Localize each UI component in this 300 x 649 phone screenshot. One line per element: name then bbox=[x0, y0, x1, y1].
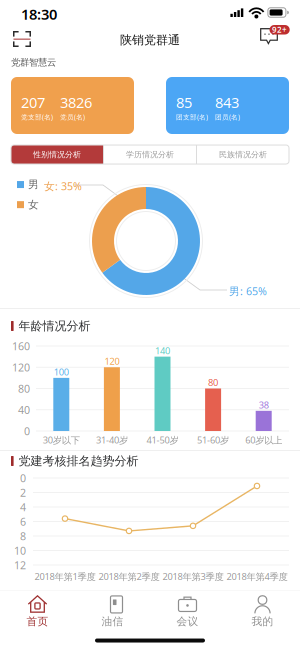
staticText: 18:30 bbox=[21, 4, 57, 24]
staticText: 120 bbox=[104, 355, 119, 367]
staticText: 6 bbox=[20, 514, 26, 529]
button[interactable]: 性别情况分析 bbox=[11, 145, 103, 164]
staticText: 女: 35% bbox=[44, 179, 82, 193]
staticText: 12 bbox=[14, 558, 26, 572]
staticText: 843 bbox=[215, 92, 239, 112]
staticText: 会议 bbox=[176, 615, 198, 628]
staticText: 160 bbox=[12, 339, 30, 353]
staticText: 3826 bbox=[60, 92, 92, 112]
button[interactable]: 学历情况分析 bbox=[104, 145, 196, 164]
staticText: 我的 bbox=[251, 615, 273, 628]
staticText: 80 bbox=[18, 381, 30, 396]
staticText: 30岁以下 bbox=[43, 434, 80, 446]
staticText: 38 bbox=[259, 399, 269, 411]
button[interactable]: 我的 bbox=[225, 590, 300, 632]
staticText: 党支部(名) bbox=[21, 113, 53, 121]
staticText: 团支部(名) bbox=[176, 113, 208, 121]
button[interactable]: 207 bbox=[11, 77, 134, 134]
staticText: 男 bbox=[28, 178, 39, 191]
staticText: 92+ bbox=[272, 24, 287, 35]
staticText: 团员(名) bbox=[215, 113, 240, 121]
button[interactable]: 油信 bbox=[75, 590, 150, 632]
staticText: 2018年第2季度 bbox=[98, 570, 159, 583]
staticText: 民族情况分析 bbox=[219, 150, 267, 159]
staticText: 男: 65% bbox=[229, 284, 267, 298]
staticText: 油信 bbox=[101, 615, 123, 628]
staticText: 8 bbox=[20, 529, 26, 543]
staticText: 党员(名) bbox=[60, 113, 85, 121]
staticText: 2018年第4季度 bbox=[226, 570, 287, 583]
staticText: 100 bbox=[54, 366, 69, 378]
staticText: 85 bbox=[176, 92, 192, 112]
staticText: 0 bbox=[24, 424, 30, 438]
staticText: 2018年第3季度 bbox=[162, 570, 223, 583]
staticText: 0 bbox=[20, 471, 26, 485]
button[interactable]: 民族情况分析 bbox=[197, 145, 289, 164]
staticText: 10 bbox=[14, 543, 26, 558]
staticText: 党群智慧云 bbox=[11, 57, 56, 68]
button[interactable]: 首页 bbox=[0, 590, 75, 632]
staticText: 51-60岁 bbox=[197, 434, 229, 446]
staticText: 120 bbox=[12, 360, 30, 374]
button[interactable]: 扫一扫 bbox=[0, 25, 51, 53]
staticText: 60岁以上 bbox=[245, 434, 282, 446]
staticText: 党建考核排名趋势分析 bbox=[19, 454, 139, 468]
staticText: 2018年第1季度 bbox=[34, 570, 95, 583]
button[interactable]: 消息 bbox=[260, 25, 300, 53]
staticText: 首页 bbox=[26, 615, 48, 628]
staticText: 陕销党群通 bbox=[120, 33, 180, 47]
staticText: 40 bbox=[18, 403, 30, 417]
staticText: 207 bbox=[21, 92, 45, 112]
button[interactable]: 85 bbox=[166, 77, 289, 134]
staticText: 80 bbox=[208, 376, 218, 389]
staticText: 4 bbox=[20, 500, 26, 514]
staticText: 学历情况分析 bbox=[126, 150, 174, 159]
staticText: 年龄情况分析 bbox=[19, 319, 91, 333]
staticText: 31-40岁 bbox=[96, 434, 128, 446]
button[interactable]: 会议 bbox=[150, 590, 225, 632]
staticText: 2 bbox=[20, 485, 26, 500]
staticText: 性别情况分析 bbox=[33, 150, 81, 159]
staticText: 140 bbox=[155, 344, 170, 357]
staticText: 女 bbox=[28, 198, 39, 211]
staticText: 41-50岁 bbox=[146, 434, 178, 446]
